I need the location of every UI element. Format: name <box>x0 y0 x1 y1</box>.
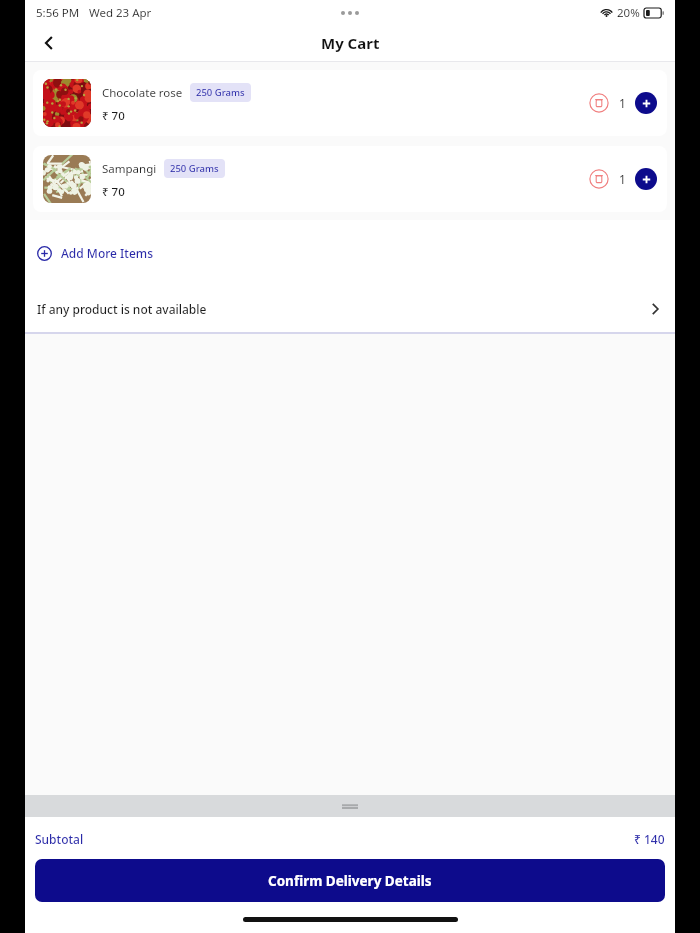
staticText: 5:56 PM <box>36 5 80 21</box>
staticText: ₹ 70 <box>102 184 125 200</box>
button[interactable]: Chocolate rose <box>33 70 667 136</box>
staticText: Add More Items <box>61 245 153 261</box>
staticText: 20% <box>617 5 640 21</box>
staticText: 250 Grams <box>196 86 245 99</box>
staticText: Confirm Delivery Details <box>268 872 432 890</box>
staticText: ₹ 140 <box>634 831 665 847</box>
button[interactable]: Back <box>31 25 67 61</box>
button[interactable]: Sampangi <box>33 146 667 212</box>
button[interactable]: Remove item <box>588 168 610 190</box>
staticText: 250 Grams <box>170 162 219 175</box>
staticText: ₹ 70 <box>102 108 125 124</box>
staticText: Wed 23 Apr <box>89 5 152 21</box>
staticText: Chocolate rose <box>102 85 183 101</box>
button[interactable]: Confirm Delivery Details <box>35 859 665 902</box>
staticText: Sampangi <box>102 161 157 177</box>
button[interactable]: If any product is not available <box>25 286 675 332</box>
button[interactable]: Add More Items <box>25 232 675 274</box>
button[interactable]: Remove item <box>588 92 610 114</box>
button[interactable]: Increase quantity <box>635 92 657 114</box>
button[interactable]: Increase quantity <box>635 168 657 190</box>
staticText: 1 <box>619 171 626 187</box>
staticText: If any product is not available <box>37 301 207 317</box>
staticText: Subtotal <box>35 831 84 847</box>
staticText: 1 <box>619 95 626 111</box>
staticText: My Cart <box>321 33 380 53</box>
